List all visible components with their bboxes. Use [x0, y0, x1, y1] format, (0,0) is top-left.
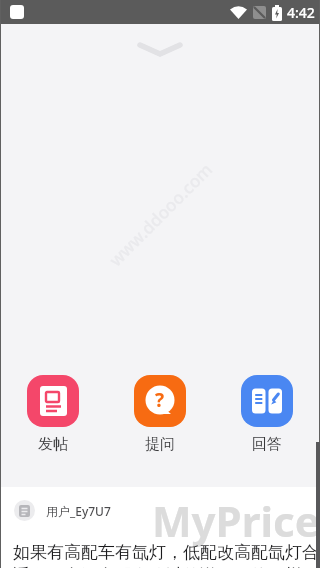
staticText: 4:42	[287, 3, 315, 22]
button[interactable]: 回答	[241, 375, 293, 454]
staticText: 回答	[252, 435, 282, 454]
button[interactable]: 发帖	[27, 375, 79, 454]
staticText: MyPrice	[152, 492, 320, 549]
staticText: ?	[155, 387, 165, 413]
button[interactable]: 如果有高配车有氙灯，低配改高配氙灯合 适吗？有没有朋友改过的说一下效果样	[13, 542, 319, 568]
staticText: 发帖	[38, 435, 68, 454]
staticText: 用户_Ey7U7	[46, 503, 111, 519]
staticText: 提问	[145, 435, 175, 454]
button[interactable]: ?	[134, 375, 186, 454]
button[interactable]: 用户_Ey7U7	[14, 500, 111, 521]
